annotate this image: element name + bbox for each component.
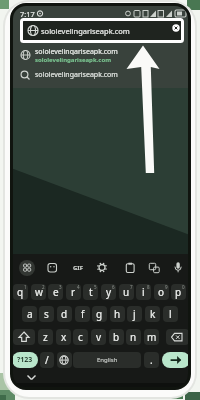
staticText: 3 — [59, 284, 62, 290]
button[interactable]: m — [144, 329, 159, 345]
staticText: sololevelingariseapk.com — [35, 70, 118, 80]
button[interactable]: n — [126, 329, 141, 345]
staticText: 7 — [130, 284, 133, 290]
staticText: m — [147, 330, 157, 344]
staticText: i — [142, 285, 145, 299]
staticText: English — [97, 356, 118, 364]
button[interactable] — [73, 352, 141, 368]
staticText: q — [17, 285, 24, 299]
staticText: d — [61, 307, 68, 321]
staticText: r — [71, 285, 76, 299]
button[interactable]: b — [109, 329, 124, 345]
button[interactable]: w — [31, 284, 46, 300]
button[interactable]: l — [163, 306, 178, 322]
staticText: 6 — [112, 284, 115, 290]
button[interactable]: . — [144, 352, 159, 368]
staticText: z — [43, 330, 48, 344]
staticText: ?123 — [17, 355, 33, 365]
staticText: y — [106, 285, 112, 299]
staticText: k — [150, 307, 156, 321]
staticText: 4 — [77, 284, 80, 290]
button[interactable]: t — [83, 284, 98, 300]
button[interactable]: c — [73, 329, 88, 345]
staticText: p — [175, 285, 182, 299]
staticText: sololevelingariseapk.com — [35, 56, 111, 63]
button[interactable] — [162, 352, 190, 368]
staticText: 0 — [182, 284, 185, 290]
staticText: w — [35, 285, 43, 299]
button[interactable]: z — [38, 329, 53, 345]
staticText: s — [44, 307, 49, 321]
button[interactable]: a — [22, 306, 37, 322]
button[interactable] — [13, 46, 188, 66]
button[interactable]: h — [110, 306, 125, 322]
staticText: a — [27, 307, 33, 321]
staticText: . — [150, 353, 153, 367]
staticText: 1 — [24, 284, 27, 290]
staticText: sololevelingariseapk.com — [35, 47, 118, 55]
staticText: 9 — [165, 284, 168, 290]
button[interactable]: p — [171, 284, 186, 300]
staticText: / — [45, 353, 49, 367]
button[interactable]: i — [136, 284, 151, 300]
button[interactable]: x — [56, 329, 71, 345]
staticText: u — [123, 285, 130, 299]
button[interactable]: j — [127, 306, 142, 322]
button[interactable] — [19, 260, 35, 276]
staticText: x — [61, 330, 67, 344]
button[interactable]: e — [48, 284, 63, 300]
staticText: GIF — [73, 264, 83, 272]
staticText: n — [130, 330, 137, 344]
staticText: 2 — [42, 284, 45, 290]
staticText: e — [53, 285, 59, 299]
button[interactable]: k — [145, 306, 160, 322]
button[interactable]: g — [92, 306, 107, 322]
staticText: 7:17 — [20, 9, 35, 18]
staticText: f — [81, 307, 85, 321]
button[interactable] — [166, 329, 189, 345]
button[interactable]: d — [57, 306, 72, 322]
button[interactable]: q — [13, 284, 28, 300]
button[interactable]: y — [101, 284, 116, 300]
button[interactable]: s — [39, 306, 54, 322]
button[interactable]: / — [40, 352, 54, 368]
button[interactable]: u — [119, 284, 134, 300]
button[interactable] — [57, 352, 72, 368]
staticText: v — [96, 330, 102, 344]
staticText: sololevelingariseapk.com — [41, 26, 130, 36]
staticText: j — [133, 307, 136, 321]
button[interactable] — [12, 352, 38, 368]
staticText: g — [96, 307, 103, 321]
button[interactable]: r — [66, 284, 81, 300]
staticText: 5 — [94, 284, 97, 290]
staticText: 8 — [147, 284, 150, 290]
staticText: t — [89, 285, 93, 299]
staticText: h — [114, 307, 121, 321]
staticText: c — [78, 330, 83, 344]
button[interactable]: v — [91, 329, 106, 345]
staticText: o — [158, 285, 165, 299]
button[interactable]: f — [75, 306, 90, 322]
button[interactable] — [20, 18, 184, 43]
staticText: b — [113, 330, 120, 344]
button[interactable]: o — [154, 284, 169, 300]
button[interactable] — [13, 329, 35, 345]
staticText: l — [169, 307, 172, 321]
